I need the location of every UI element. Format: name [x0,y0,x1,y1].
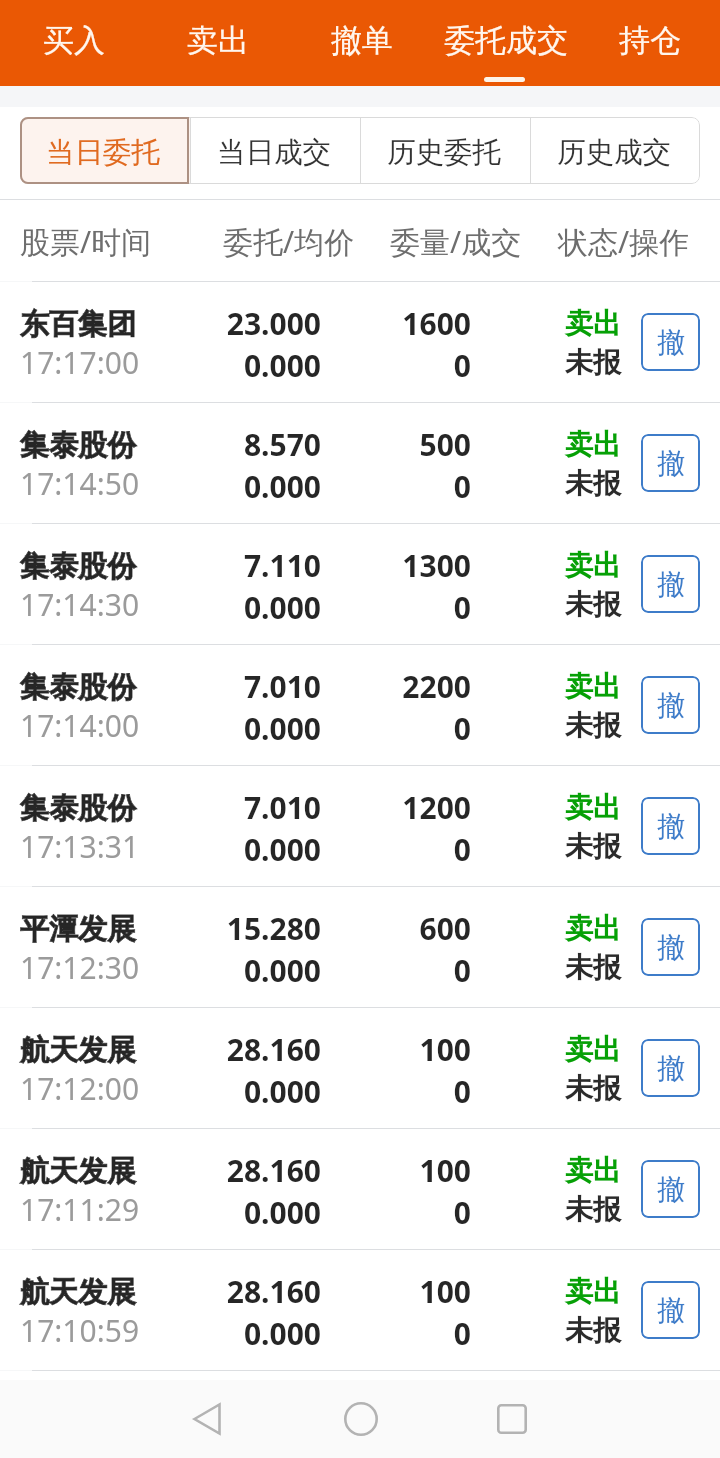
staticText: 集泰股份 [20,427,136,464]
button[interactable]: 撤 [641,1160,700,1218]
staticText: 17:11:29 [20,1189,140,1230]
staticText: 撤 [657,567,685,602]
staticText: 7.110 [0,545,321,586]
staticText: 7.010 [0,787,321,828]
staticText: 0.000 [0,345,321,386]
staticText: 卖出 [533,427,653,462]
button[interactable]: 撤 [641,313,700,371]
button[interactable]: Recent apps [474,1381,550,1457]
button[interactable]: 集泰股份 [0,524,720,644]
staticText: 撤 [657,688,685,723]
staticText: 平潭发展 [20,911,136,948]
staticText: 东百集团 [20,306,136,343]
button[interactable]: 历史委托 [361,117,530,184]
button[interactable]: 航天发展 [0,1008,720,1128]
staticText: 历史成交 [557,135,671,171]
staticText: 航天发展 [20,1032,136,1069]
button[interactable]: 撤 [641,555,700,613]
staticText: 卖出 [533,669,653,704]
staticText: 8.570 [0,424,321,465]
staticText: 撤 [657,930,685,965]
staticText: 卖出 [533,911,653,946]
staticText: 集泰股份 [20,790,136,827]
staticText: 当日委托 [46,135,160,171]
staticText: 东百集团 [20,306,136,343]
staticText: 17:17:00 [20,342,140,383]
staticText: 撤 [657,809,685,844]
staticText: 28.160 [0,1150,321,1191]
staticText: 集泰股份 [20,548,136,585]
staticText: 卖出 [533,1274,653,1309]
button[interactable]: 当日委托 [20,117,190,184]
staticText: 航天发展 [20,1032,136,1069]
button[interactable]: 平潭发展 [0,887,720,1007]
staticText: 未报 [533,950,653,985]
button[interactable]: 集泰股份 [0,766,720,886]
button[interactable]: 撤 [641,676,700,734]
staticText: 航天发展 [20,1153,136,1190]
staticText: 0.000 [0,829,321,870]
staticText: 28.160 [0,1271,321,1312]
staticText: 撤 [657,446,685,481]
button[interactable]: 撤 [641,918,700,976]
staticText: 股票/时间 [20,221,152,262]
staticText: 平潭发展 [20,911,136,948]
staticText: 集泰股份 [20,548,136,585]
staticText: 0.000 [0,466,321,507]
button[interactable]: 集泰股份 [0,403,720,523]
staticText: 0 [0,1313,471,1354]
button[interactable]: 历史成交 [531,117,700,184]
staticText: 卖出 [187,21,249,60]
button[interactable]: 持仓 [576,0,720,86]
staticText: 100 [0,1029,471,1070]
staticText: 100 [0,1271,471,1312]
button[interactable]: Back [169,1381,245,1457]
staticText: 0 [0,466,471,507]
staticText: 卖出 [533,548,653,583]
button[interactable]: 撤单 [288,0,432,86]
staticText: 集泰股份 [20,790,136,827]
button[interactable]: 卖出 [144,0,288,86]
staticText: 航天发展 [20,1274,136,1311]
staticText: 0.000 [0,708,321,749]
staticText: 撤 [657,1172,685,1207]
button[interactable]: 集泰股份 [0,645,720,765]
staticText: 委量/成交 [390,221,522,262]
button[interactable]: 撤 [641,1039,700,1097]
button[interactable]: 撤 [641,797,700,855]
staticText: 7.010 [0,666,321,707]
button[interactable]: 当日成交 [191,117,360,184]
staticText: 28.160 [0,1029,321,1070]
staticText: 17:13:31 [20,826,140,867]
staticText: 航天发展 [20,1153,136,1190]
button[interactable]: Home [323,1381,399,1457]
staticText: 1600 [0,303,471,344]
button[interactable]: 撤 [641,434,700,492]
staticText: 17:14:50 [20,463,140,504]
staticText: 0.000 [0,587,321,628]
staticText: 17:14:30 [20,584,140,625]
staticText: 23.000 [0,303,321,344]
button[interactable]: 委托成交 [432,0,576,86]
staticText: 17:12:30 [20,947,140,988]
staticText: 0.000 [0,1192,321,1233]
staticText: 状态/操作 [558,221,690,262]
button[interactable]: 撤 [641,1281,700,1339]
staticText: 17:12:00 [20,1068,140,1109]
staticText: 15.280 [0,908,321,949]
staticText: 卖出 [533,790,653,825]
staticText: 撤 [657,325,685,360]
staticText: 未报 [533,708,653,743]
button[interactable]: 东百集团 [0,282,720,402]
staticText: 历史委托 [387,135,501,171]
staticText: 未报 [533,466,653,501]
staticText: 未报 [533,1192,653,1227]
staticText: 委托成交 [444,21,568,60]
staticText: 0 [0,708,471,749]
button[interactable]: 买入 [0,0,144,86]
button[interactable]: 航天发展 [0,1129,720,1249]
staticText: 买入 [43,21,105,60]
staticText: 1200 [0,787,471,828]
button[interactable]: 航天发展 [0,1250,720,1370]
staticText: 撤 [657,1293,685,1328]
